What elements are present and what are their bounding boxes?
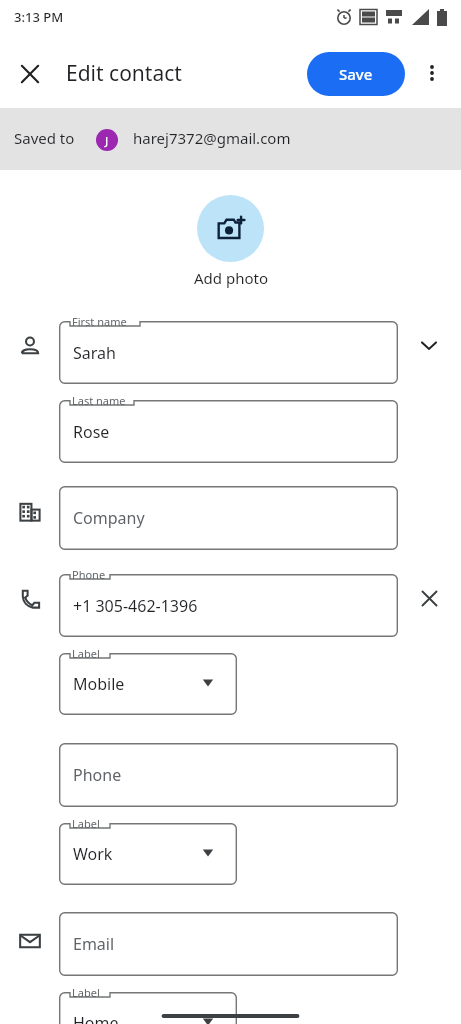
staticText: Add photo bbox=[194, 268, 268, 288]
staticText: Saved to bbox=[14, 128, 75, 148]
staticText: Sarah bbox=[73, 342, 116, 364]
button[interactable]: First name bbox=[59, 313, 398, 384]
staticText: First name bbox=[72, 314, 127, 329]
staticText: Email bbox=[73, 933, 115, 955]
staticText: Rose bbox=[73, 421, 110, 443]
button[interactable]: Label bbox=[59, 815, 237, 885]
staticText: harej7372@gmail.com bbox=[133, 128, 291, 148]
button[interactable]: Save bbox=[307, 52, 405, 96]
button[interactable]: More options bbox=[409, 50, 455, 96]
button[interactable]: Remove phone bbox=[408, 577, 450, 619]
staticText: Company bbox=[73, 507, 145, 529]
staticText: Phone bbox=[72, 567, 106, 582]
staticText: Save bbox=[339, 64, 373, 84]
staticText: Phone bbox=[73, 764, 122, 786]
button[interactable]: Close bbox=[6, 50, 54, 98]
staticText: Edit contact bbox=[66, 59, 182, 88]
staticText: Mobile bbox=[73, 673, 125, 695]
button[interactable]: Label bbox=[59, 645, 237, 715]
staticText: Label bbox=[72, 816, 100, 831]
staticText: J bbox=[105, 133, 109, 148]
button[interactable]: Phone bbox=[59, 743, 398, 807]
button[interactable]: Company bbox=[59, 486, 398, 550]
button[interactable]: Saved to bbox=[0, 108, 461, 170]
staticText: Label bbox=[72, 985, 100, 1000]
staticText: Last name bbox=[72, 393, 126, 408]
staticText: Work bbox=[73, 843, 113, 865]
button[interactable]: Label bbox=[59, 984, 237, 1024]
staticText: +1 305-462-1396 bbox=[73, 595, 198, 617]
button[interactable]: Expand name fields bbox=[408, 324, 450, 366]
staticText: 3:13 PM bbox=[14, 8, 64, 26]
button[interactable]: Email bbox=[59, 912, 398, 976]
button[interactable]: Phone bbox=[59, 566, 398, 637]
button[interactable]: Last name bbox=[59, 392, 398, 463]
button[interactable]: Add photo bbox=[197, 195, 264, 262]
staticText: Home bbox=[73, 1012, 119, 1024]
staticText: Label bbox=[72, 646, 100, 661]
